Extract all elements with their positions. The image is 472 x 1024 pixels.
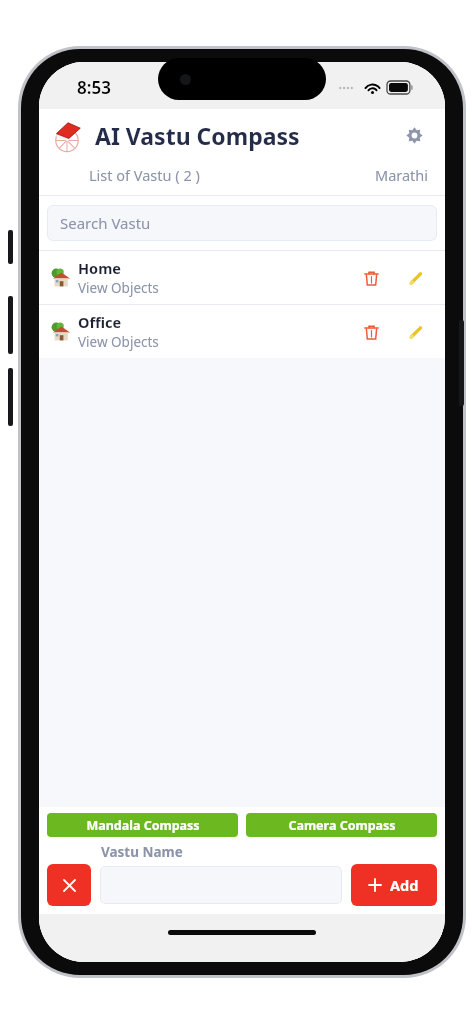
button[interactable]: Delete Office	[353, 314, 389, 350]
staticText: List of Vastu ( 2 )	[89, 165, 200, 185]
staticText: View Objects	[78, 279, 159, 297]
button[interactable]: Marathi	[375, 165, 429, 185]
button[interactable]: Mandala Compass	[47, 813, 238, 837]
staticText: Vastu Name	[101, 843, 183, 861]
button[interactable]: Search Vastu	[47, 205, 437, 241]
button[interactable]: Clear	[47, 864, 91, 906]
button[interactable]: Add	[351, 864, 437, 906]
staticText: Mandala Compass	[86, 817, 200, 834]
button[interactable]: Settings	[397, 118, 431, 152]
staticText: Camera Compass	[288, 817, 396, 834]
button[interactable]: Edit Home	[397, 260, 433, 296]
button[interactable]	[100, 866, 342, 904]
button[interactable]: Delete Home	[353, 260, 389, 296]
button[interactable]: Camera Compass	[246, 813, 437, 837]
staticText: Office	[78, 312, 122, 332]
button[interactable]: Edit Office	[397, 314, 433, 350]
staticText: Marathi	[375, 165, 429, 185]
staticText: Add	[390, 875, 419, 895]
staticText: 8:53	[77, 76, 111, 99]
button[interactable]: Home	[39, 251, 445, 304]
staticText: Search Vastu	[60, 213, 151, 233]
staticText: Home	[78, 258, 121, 278]
staticText: View Objects	[78, 333, 159, 351]
staticText: AI Vastu Compass	[95, 120, 300, 151]
button[interactable]: Office	[39, 305, 445, 358]
